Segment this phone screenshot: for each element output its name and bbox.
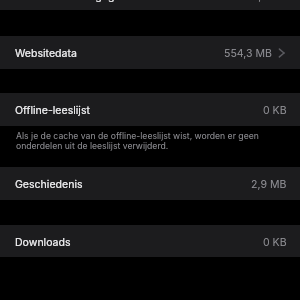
staticText: Wis alle websitegegevens [15, 0, 144, 3]
staticText: Downloads [15, 236, 71, 249]
staticText: 0 KB [263, 104, 287, 117]
staticText: 554,3 MB [239, 0, 287, 3]
staticText: 0 KB [263, 236, 287, 249]
button[interactable]: Wis alle websitegegevens [0, 0, 300, 12]
staticText: 2,9 MB [251, 178, 287, 191]
button[interactable]: Websitedata [0, 36, 300, 69]
staticText: Offline-leeslijst [15, 104, 90, 117]
staticText: 554,3 MB [224, 47, 272, 60]
button[interactable]: Offline-leeslijst [0, 93, 300, 126]
other: Open [271, 46, 285, 60]
button[interactable]: Downloads [0, 225, 300, 257]
staticText: Websitedata [15, 47, 77, 60]
button[interactable]: Geschiedenis [0, 167, 300, 200]
staticText: Als je de cache van de offline-leeslijst… [16, 131, 275, 151]
staticText: Geschiedenis [15, 178, 83, 191]
